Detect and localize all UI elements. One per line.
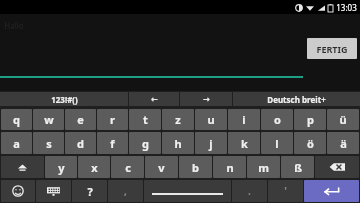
button[interactable]: Switch keyboard: [36, 180, 71, 202]
button[interactable]: n: [213, 156, 246, 178]
staticText: ': [284, 184, 287, 198]
button[interactable]: ,: [108, 180, 143, 202]
staticText: w: [44, 112, 54, 127]
button[interactable]: d: [65, 132, 96, 154]
button[interactable]: →: [180, 92, 232, 106]
button[interactable]: ': [268, 180, 303, 202]
button[interactable]: o: [261, 109, 293, 130]
staticText: ?: [87, 184, 93, 199]
staticText: o: [274, 112, 281, 127]
button[interactable]: Shift: [1, 156, 44, 178]
staticText: p: [307, 112, 314, 127]
staticText: d: [77, 136, 84, 151]
button[interactable]: v: [145, 156, 178, 178]
button[interactable]: a: [1, 132, 32, 154]
staticText: y: [58, 160, 65, 175]
button[interactable]: e: [65, 109, 96, 130]
staticText: i: [242, 112, 246, 127]
button[interactable]: Backspace: [315, 156, 359, 178]
staticText: k: [241, 136, 248, 151]
staticText: r: [110, 112, 115, 127]
button[interactable]: u: [195, 109, 227, 130]
staticText: h: [174, 136, 182, 151]
button[interactable]: ä: [327, 132, 359, 154]
button[interactable]: s: [33, 132, 64, 154]
staticText: 123!#(): [51, 94, 78, 105]
staticText: q: [13, 112, 20, 127]
staticText: z: [175, 112, 181, 127]
button[interactable]: ö: [294, 132, 326, 154]
staticText: ß: [294, 160, 302, 175]
staticText: s: [46, 136, 52, 151]
staticText: a: [13, 136, 20, 151]
staticText: b: [192, 160, 199, 175]
button[interactable]: h: [162, 132, 194, 154]
button[interactable]: f: [97, 132, 128, 154]
staticText: ä: [340, 136, 347, 151]
button[interactable]: j: [195, 132, 227, 154]
button[interactable]: m: [247, 156, 280, 178]
staticText: Hallo: [4, 20, 24, 31]
button[interactable]: c: [111, 156, 144, 178]
button[interactable]: Space: [144, 180, 231, 202]
button[interactable]: ü: [327, 109, 359, 130]
button[interactable]: r: [97, 109, 128, 130]
button[interactable]: .: [232, 180, 267, 202]
button[interactable]: ß: [281, 156, 314, 178]
button[interactable]: w: [33, 109, 64, 130]
staticText: ü: [339, 112, 347, 127]
staticText: FERTIG: [316, 43, 348, 55]
staticText: g: [142, 136, 149, 151]
staticText: Deutsch breit+: [267, 94, 326, 105]
staticText: u: [207, 112, 215, 127]
staticText: m: [258, 160, 269, 175]
button[interactable]: ←: [129, 92, 179, 106]
staticText: ←: [151, 95, 158, 104]
staticText: .: [248, 184, 251, 198]
button[interactable]: z: [162, 109, 194, 130]
button[interactable]: l: [261, 132, 293, 154]
button[interactable]: b: [179, 156, 212, 178]
staticText: t: [143, 112, 148, 127]
staticText: x: [91, 160, 98, 175]
button[interactable]: k: [228, 132, 260, 154]
staticText: j: [209, 136, 213, 151]
button[interactable]: t: [129, 109, 161, 130]
staticText: n: [226, 160, 234, 175]
button[interactable]: Emoji: [1, 180, 35, 202]
staticText: c: [125, 160, 131, 175]
button[interactable]: g: [129, 132, 161, 154]
button[interactable]: p: [294, 109, 326, 130]
button[interactable]: 123!#(): [0, 92, 128, 106]
staticText: ö: [307, 136, 314, 151]
staticText: v: [158, 160, 165, 175]
button[interactable]: Deutsch breit+: [233, 92, 360, 106]
button[interactable]: FERTIG: [307, 38, 357, 59]
staticText: l: [275, 136, 279, 151]
button[interactable]: y: [45, 156, 77, 178]
button[interactable]: x: [78, 156, 110, 178]
staticText: e: [77, 112, 84, 127]
staticText: ,: [124, 184, 127, 198]
button[interactable]: Enter: [304, 180, 359, 202]
button[interactable]: i: [228, 109, 260, 130]
button[interactable]: q: [1, 109, 32, 130]
button[interactable]: ?: [72, 180, 107, 202]
staticText: →: [203, 95, 210, 104]
staticText: f: [110, 136, 115, 151]
staticText: 13:03: [336, 2, 357, 13]
